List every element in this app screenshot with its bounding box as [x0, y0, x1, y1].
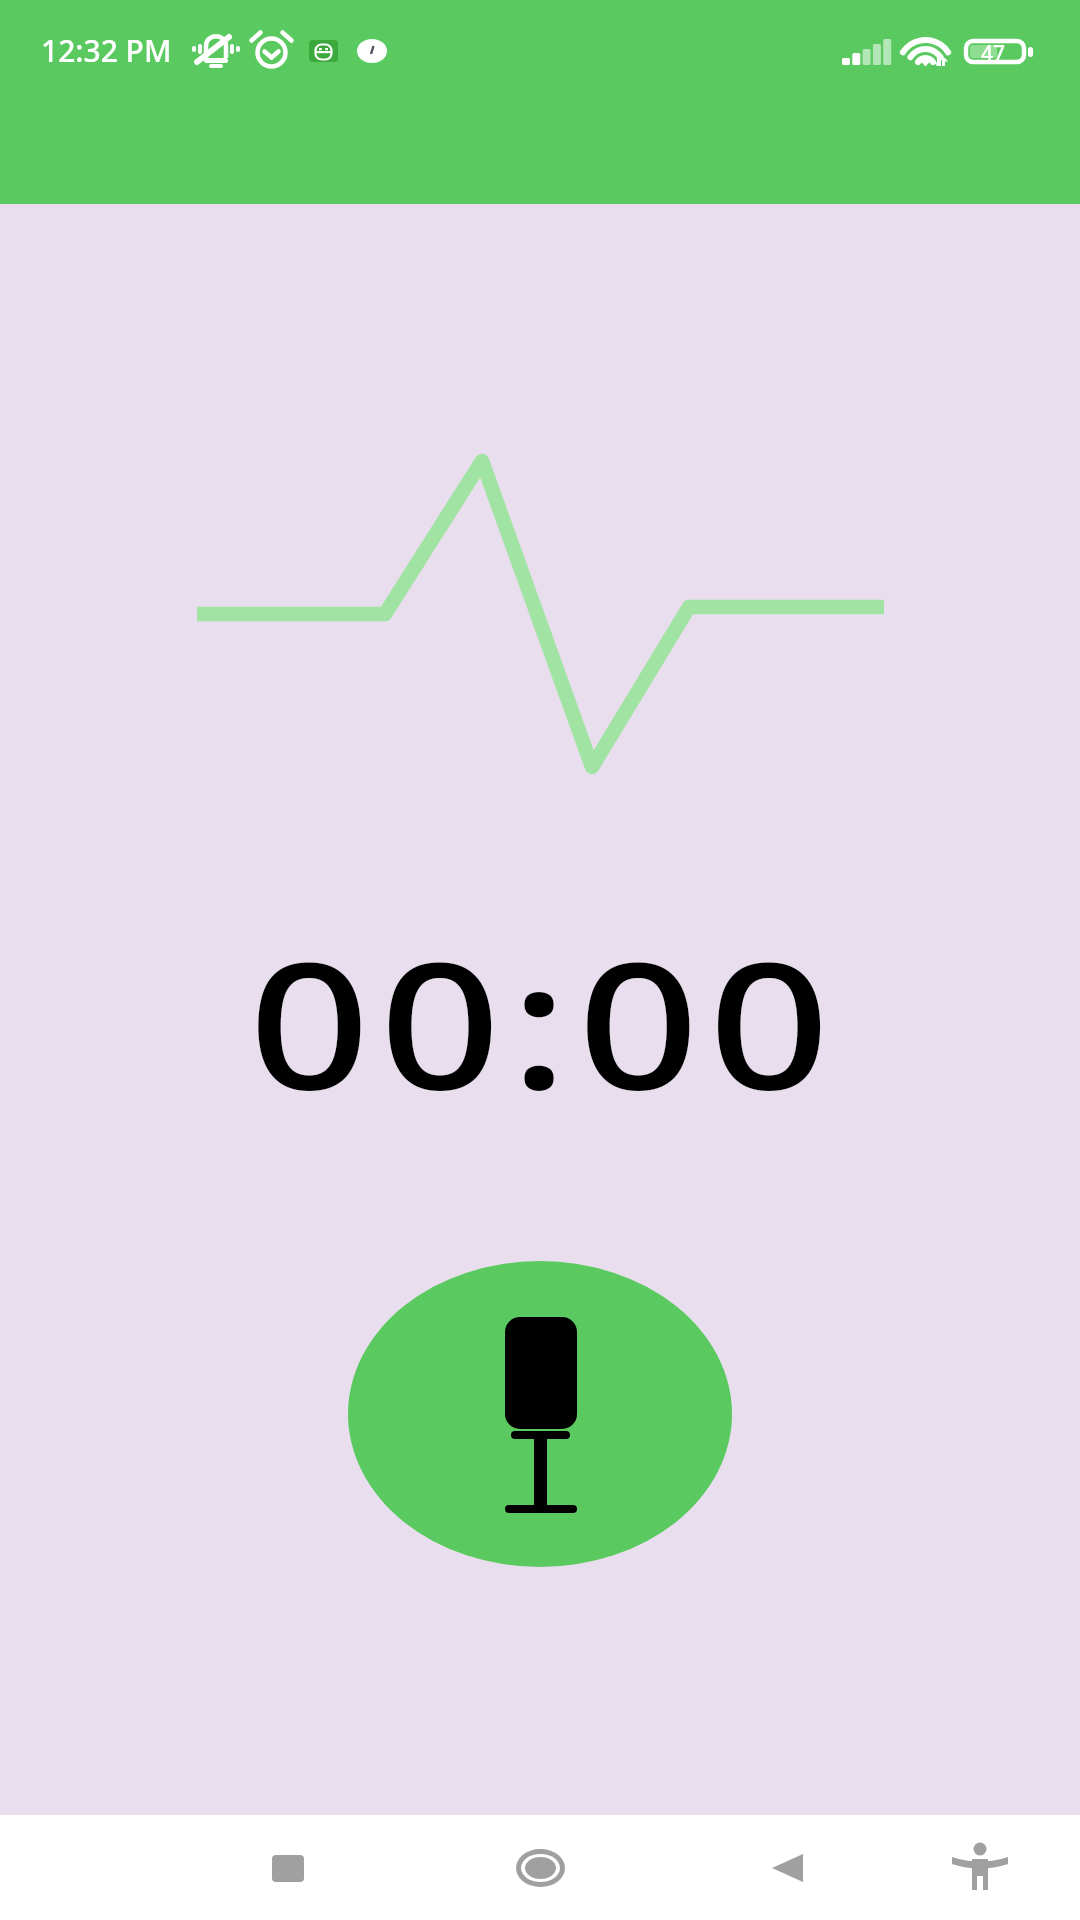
button[interactable]: Start recording — [348, 1261, 732, 1567]
button[interactable]: Recent apps — [240, 1828, 336, 1908]
button[interactable]: Back — [740, 1828, 836, 1908]
button[interactable]: Home — [492, 1828, 588, 1908]
button[interactable]: Accessibility — [932, 1828, 1028, 1908]
staticText: 12:32 PM — [41, 30, 172, 71]
staticText: 00:00 — [248, 903, 840, 1140]
staticText: 47 — [981, 39, 1006, 68]
